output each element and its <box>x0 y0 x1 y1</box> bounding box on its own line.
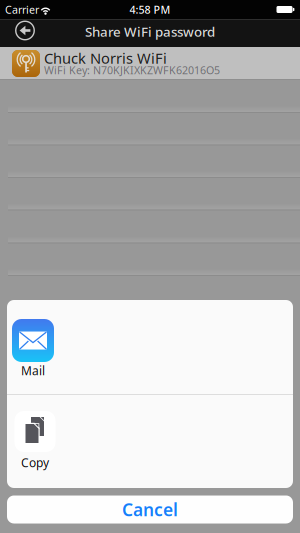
staticText: WiFi Key: N70KJKIXKZWFK62016O5 <box>44 63 220 77</box>
staticText: Copy <box>21 454 49 470</box>
staticText: 4:58 PM <box>129 2 170 17</box>
button[interactable]: Cancel <box>7 495 293 523</box>
staticText: Cancel <box>122 498 178 521</box>
button[interactable]: Copy <box>7 395 293 488</box>
staticText: Share WiFi password <box>85 23 215 40</box>
button[interactable]: Chuck Norris WiFi <box>0 47 300 80</box>
staticText: Carrier <box>5 2 39 17</box>
staticText: Mail <box>21 362 45 378</box>
button[interactable]: Share with Mail <box>7 300 293 394</box>
staticText: Chuck Norris WiFi <box>44 48 167 68</box>
button[interactable]: Back <box>13 18 37 42</box>
